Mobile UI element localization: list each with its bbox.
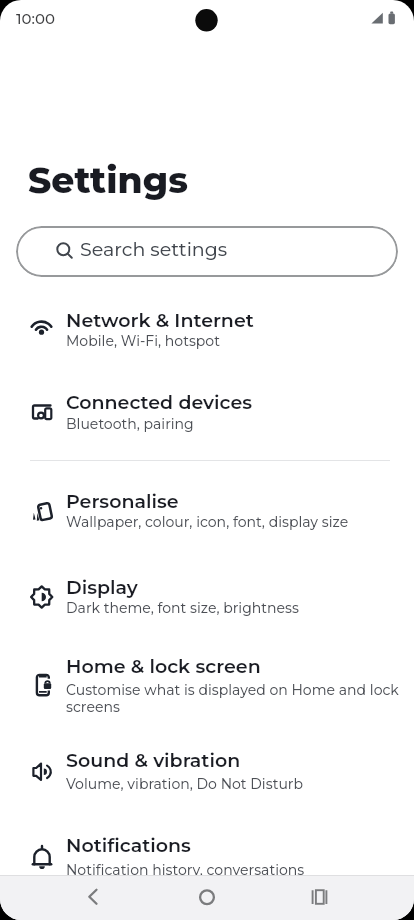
button[interactable] [296, 876, 342, 920]
staticText: Mobile, Wi-Fi, hotspot [66, 332, 220, 349]
staticText: Volume, vibration, Do Not Disturb [66, 775, 303, 792]
button[interactable]: Display [0, 564, 414, 632]
staticText: Wallpaper, colour, icon, font, display s… [66, 513, 349, 530]
staticText: Network & Internet [66, 309, 254, 332]
staticText: Search settings [80, 238, 228, 261]
staticText: Notification history, conversations [66, 861, 305, 878]
button[interactable]: Sound & vibration [0, 736, 414, 808]
staticText: Notifications [66, 834, 191, 857]
staticText: Sound & vibration [66, 749, 241, 772]
button[interactable] [69, 876, 115, 920]
button[interactable]: Home & lock screen [0, 642, 414, 728]
button[interactable]: Search settings [16, 226, 398, 277]
button[interactable] [184, 876, 230, 920]
staticText: Home & lock screen [66, 655, 261, 678]
staticText: Dark theme, font size, brightness [66, 599, 299, 616]
staticText: Connected devices [66, 391, 253, 414]
button[interactable]: Personalise [0, 478, 414, 546]
staticText: Display [66, 576, 138, 599]
staticText: Customise what is displayed on Home and … [66, 681, 414, 715]
staticText: 10:00 [16, 9, 55, 27]
staticText: Personalise [66, 490, 179, 513]
button[interactable]: Network & Internet [0, 296, 414, 364]
button[interactable]: Notifications [0, 822, 414, 875]
button[interactable]: Connected devices [0, 380, 414, 448]
staticText: Settings [28, 158, 188, 202]
staticText: Bluetooth, pairing [66, 415, 194, 432]
